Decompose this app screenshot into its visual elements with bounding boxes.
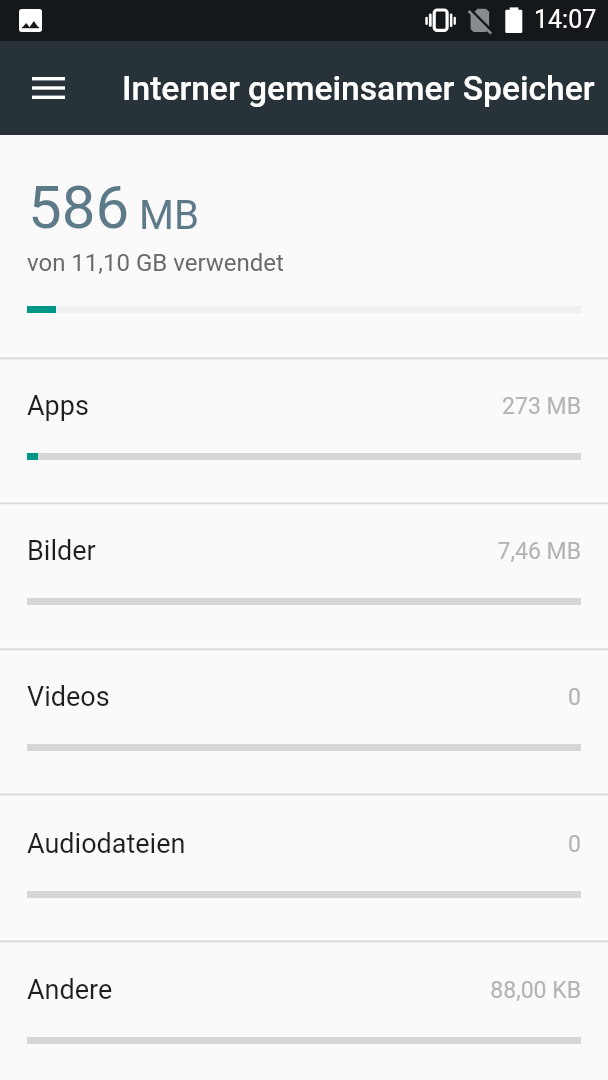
staticText: von 11,10 GB verwendet: [27, 249, 284, 277]
button[interactable]: Videos: [0, 649, 608, 794]
staticText: Audiodateien: [27, 828, 186, 860]
button[interactable]: Andere: [0, 941, 608, 1080]
button[interactable]: Open navigation drawer: [16, 56, 80, 120]
staticText: Apps: [27, 390, 89, 422]
staticText: 14:07: [534, 5, 597, 34]
staticText: Videos: [27, 681, 110, 713]
staticText: 88,00 KB: [0, 977, 581, 1004]
staticText: Interner gemeinsamer Speicher: [122, 69, 595, 108]
staticText: 273 MB: [0, 393, 581, 420]
button[interactable]: Apps: [0, 358, 608, 503]
button[interactable]: Audiodateien: [0, 794, 608, 941]
staticText: Andere: [27, 974, 113, 1006]
staticText: 0: [0, 831, 581, 858]
staticText: 7,46 MB: [0, 538, 581, 565]
staticText: MB: [139, 192, 199, 239]
staticText: Bilder: [27, 535, 96, 567]
staticText: 586: [28, 172, 130, 242]
staticText: 0: [0, 684, 581, 711]
button[interactable]: Bilder: [0, 503, 608, 649]
